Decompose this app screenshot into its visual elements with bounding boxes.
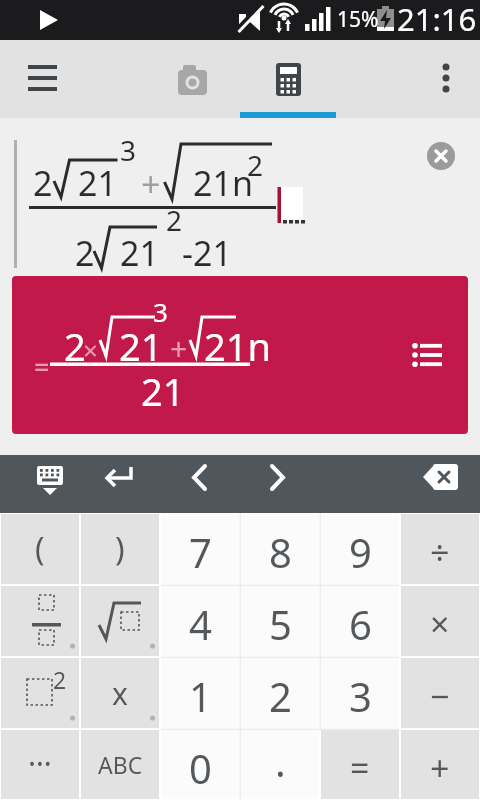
staticText: + — [141, 161, 161, 207]
staticText: 21 — [141, 365, 185, 417]
button[interactable] — [81, 586, 159, 656]
button[interactable]: 6 — [321, 586, 399, 656]
staticText: 15% — [337, 5, 379, 34]
staticText: 21:16 — [397, 0, 477, 38]
staticText: 5 — [269, 597, 292, 651]
button[interactable]: + — [401, 730, 479, 799]
button[interactable]: 2 — [1, 658, 79, 728]
staticText: ) — [115, 527, 125, 571]
button[interactable]: 8 — [241, 514, 319, 584]
button[interactable]: ÷ — [401, 514, 479, 584]
staticText: . — [275, 734, 286, 788]
button[interactable]: ( — [1, 514, 79, 584]
staticText: 7 — [189, 525, 212, 579]
staticText: 21 — [78, 160, 117, 206]
staticText: 21n — [193, 160, 253, 206]
staticText: 2 — [33, 160, 53, 206]
staticText: × — [83, 332, 98, 367]
button[interactable]: ABC — [81, 730, 159, 799]
staticText: 1 — [189, 669, 212, 723]
button[interactable]: … — [1, 730, 79, 799]
staticText: 0 — [189, 741, 212, 795]
staticText: + — [170, 328, 188, 369]
staticText: 21n — [204, 320, 271, 372]
button[interactable]: 1 — [161, 658, 239, 728]
staticText: 2 — [166, 201, 183, 239]
button[interactable] — [26, 460, 74, 508]
button[interactable]: 5 — [241, 586, 319, 656]
button[interactable] — [144, 40, 240, 118]
staticText: + — [430, 745, 450, 791]
staticText: = — [34, 348, 50, 385]
button[interactable] — [16, 58, 68, 102]
staticText: = — [350, 745, 370, 791]
staticText: 4 — [189, 597, 212, 651]
button[interactable]: − — [401, 658, 479, 728]
button[interactable] — [416, 460, 464, 508]
staticText: 2 — [53, 664, 67, 695]
button[interactable] — [404, 334, 452, 374]
staticText: … — [28, 734, 52, 775]
staticText: × — [430, 601, 450, 647]
button[interactable] — [427, 142, 455, 170]
staticText: ( — [35, 527, 45, 571]
button[interactable] — [1, 586, 79, 656]
staticText: 6 — [349, 597, 372, 651]
staticText: -21 — [182, 230, 232, 276]
button[interactable]: 7 — [161, 514, 239, 584]
button[interactable]: = — [12, 276, 468, 434]
button[interactable] — [240, 40, 336, 118]
staticText: 2 — [75, 230, 95, 276]
button[interactable] — [254, 460, 302, 508]
staticText: 2 — [247, 146, 264, 184]
staticText: 21 — [119, 320, 163, 372]
button[interactable]: . — [241, 730, 319, 799]
button[interactable]: = — [321, 730, 399, 799]
button[interactable]: 0 — [161, 730, 239, 799]
staticText: ÷ — [430, 529, 450, 575]
staticText: 3 — [349, 669, 372, 723]
staticText: ABC — [98, 749, 143, 780]
button[interactable]: 4 — [161, 586, 239, 656]
button[interactable]: 3 — [321, 658, 399, 728]
button[interactable]: 9 — [321, 514, 399, 584]
staticText: 3 — [120, 131, 137, 169]
staticText: 2 — [269, 669, 292, 723]
button[interactable]: x — [81, 658, 159, 728]
button[interactable] — [176, 460, 224, 508]
staticText: 3 — [153, 294, 168, 329]
button[interactable] — [96, 460, 144, 508]
staticText: 21 — [120, 230, 159, 276]
staticText: 8 — [269, 525, 292, 579]
staticText: − — [430, 673, 450, 719]
staticText: 2 — [64, 320, 86, 372]
staticText: 9 — [349, 525, 372, 579]
button[interactable]: × — [401, 586, 479, 656]
staticText: x — [112, 673, 128, 714]
button[interactable] — [424, 58, 468, 102]
button[interactable]: ) — [81, 514, 159, 584]
button[interactable]: 2 — [241, 658, 319, 728]
